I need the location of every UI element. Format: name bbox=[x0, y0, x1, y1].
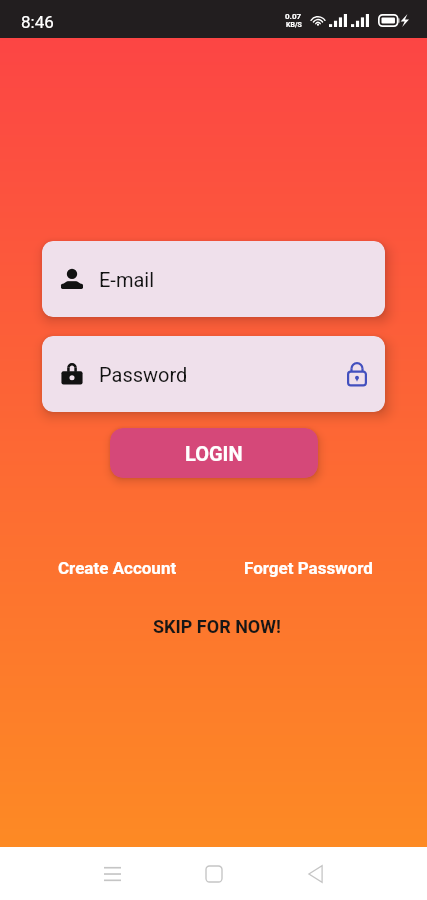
button[interactable]: Password bbox=[42, 336, 385, 412]
staticText: 0.07 bbox=[285, 12, 302, 21]
button[interactable]: Back bbox=[287, 847, 343, 900]
staticText: Create Account bbox=[58, 558, 177, 578]
button[interactable]: Home bbox=[186, 847, 242, 900]
button[interactable]: Forget Password bbox=[244, 554, 373, 582]
staticText: Password bbox=[99, 363, 188, 386]
staticText: E-mail bbox=[99, 268, 155, 291]
button[interactable]: Create Account bbox=[58, 554, 177, 582]
staticText: Forget Password bbox=[244, 558, 373, 578]
button[interactable]: LOGIN bbox=[110, 428, 318, 478]
staticText: SKIP FOR NOW! bbox=[153, 616, 281, 637]
button[interactable]: E-mail bbox=[42, 241, 385, 317]
button[interactable]: SKIP FOR NOW! bbox=[153, 612, 281, 641]
staticText: KB/S bbox=[286, 21, 302, 29]
staticText: 8:46 bbox=[21, 12, 54, 32]
other: Toggle password visibility bbox=[347, 361, 367, 387]
button[interactable]: Recent apps bbox=[84, 847, 140, 900]
staticText: LOGIN bbox=[185, 442, 243, 465]
